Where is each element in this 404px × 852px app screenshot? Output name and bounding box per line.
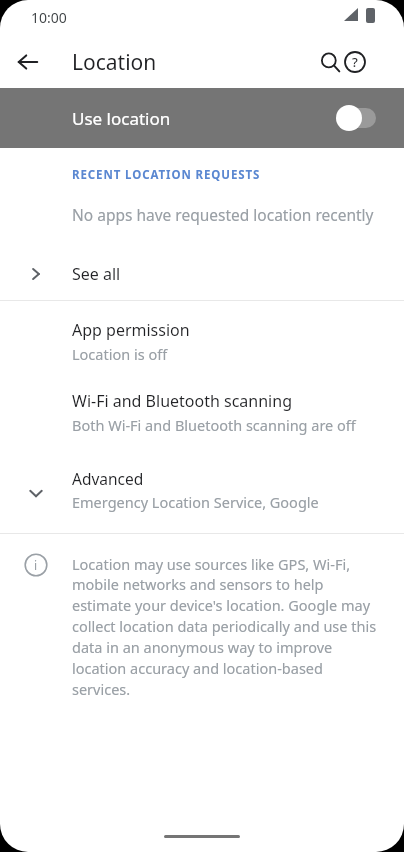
staticText: Use location (72, 107, 171, 130)
button[interactable]: Back (6, 40, 50, 84)
staticText: App permission (72, 319, 190, 341)
staticText: Emergency Location Service, Google Locat… (72, 492, 388, 512)
staticText: Location is off (72, 344, 168, 364)
button[interactable]: See all (0, 250, 404, 298)
button[interactable]: Wi-Fi and Bluetooth scanning (0, 390, 404, 443)
staticText: Location may use sources like GPS, Wi-Fi… (72, 554, 382, 700)
staticText: See all (72, 263, 121, 285)
staticText: RECENT LOCATION REQUESTS (72, 167, 261, 183)
staticText: 10:00 (31, 8, 67, 27)
button[interactable]: Search (308, 40, 352, 84)
staticText: No apps have requested location recently (72, 204, 374, 225)
staticText: Both Wi-Fi and Bluetooth scanning are of… (72, 415, 356, 435)
staticText: ? (352, 53, 358, 71)
staticText: i (34, 557, 38, 573)
button[interactable]: Help (333, 40, 377, 84)
button[interactable]: App permission (0, 301, 404, 372)
staticText: Wi-Fi and Bluetooth scanning (72, 390, 292, 412)
other: Use location toggle (334, 103, 380, 133)
staticText: Location (72, 48, 157, 77)
button[interactable]: Advanced (0, 468, 404, 518)
button[interactable]: Use location (0, 88, 404, 148)
staticText: Advanced (72, 468, 144, 489)
